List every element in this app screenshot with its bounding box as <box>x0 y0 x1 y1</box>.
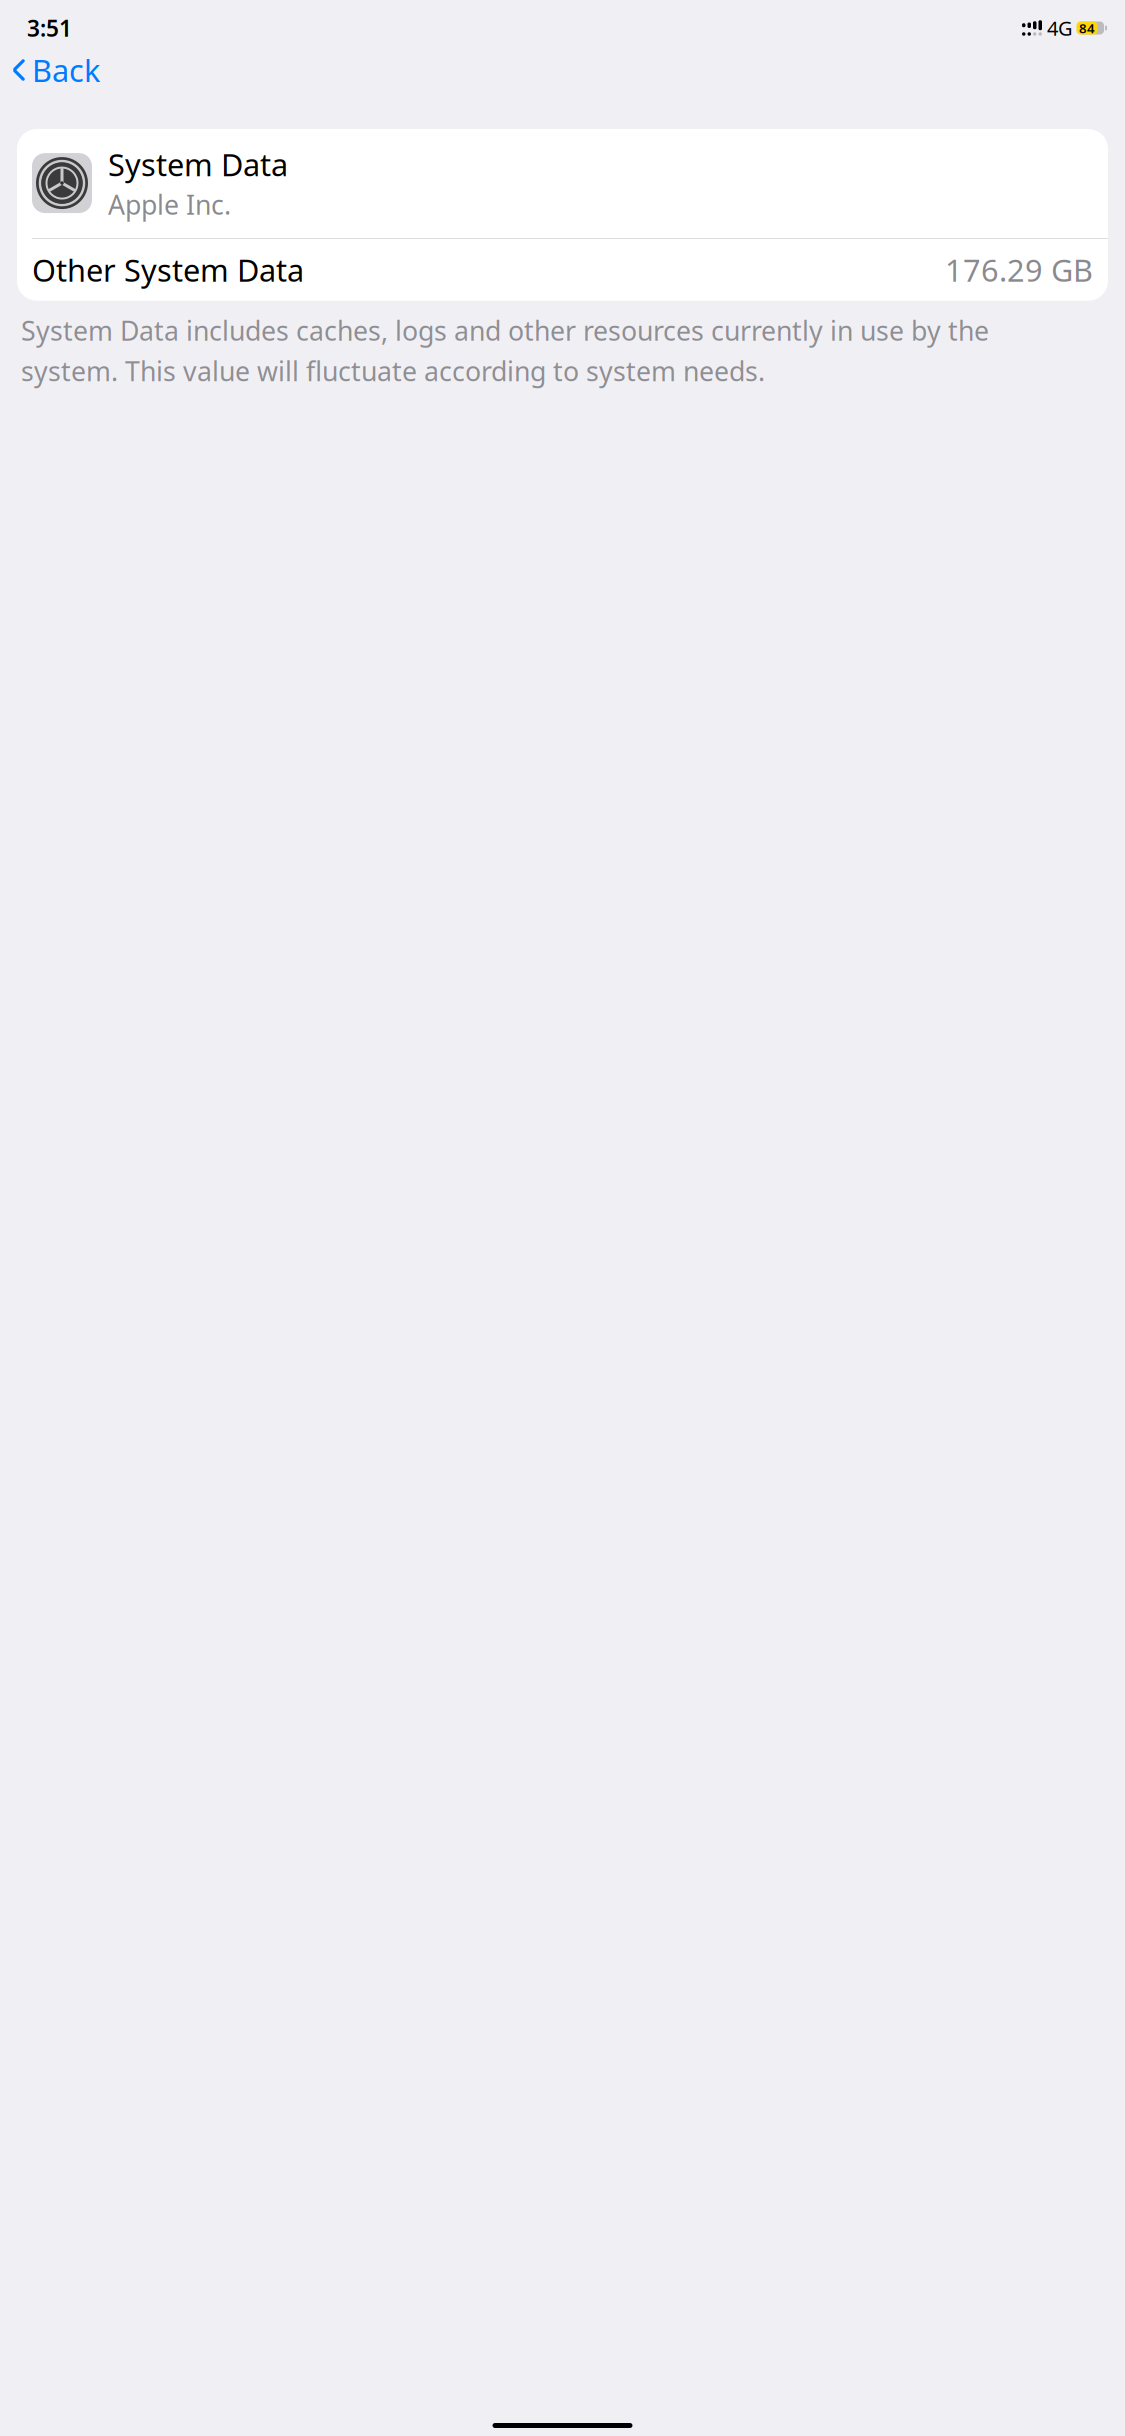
staticText: System Data includes caches, logs and ot… <box>21 313 989 388</box>
staticText: System Data <box>108 144 288 185</box>
staticText: 3:51 <box>27 13 72 43</box>
staticText: Apple Inc. <box>108 187 231 222</box>
staticText: 176.29 GB <box>945 249 1093 290</box>
staticText: Back <box>32 50 100 90</box>
staticText: 4G <box>1047 15 1073 41</box>
button[interactable]: Back <box>0 44 100 96</box>
staticText: 84 <box>1079 19 1095 37</box>
staticText: Other System Data <box>32 249 304 290</box>
button[interactable]: Other System Data <box>17 239 1108 301</box>
